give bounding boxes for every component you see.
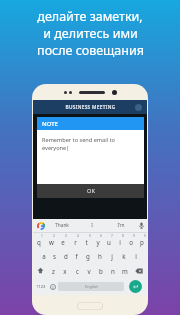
staticText: q xyxy=(37,238,41,246)
staticText: 1 xyxy=(41,234,43,238)
staticText: b xyxy=(99,267,103,275)
staticText: h xyxy=(98,252,102,260)
button[interactable]: Voice input xyxy=(135,219,147,232)
staticText: j xyxy=(111,252,113,260)
button[interactable]: Enter xyxy=(129,280,142,293)
staticText: f xyxy=(75,252,78,260)
staticText: 0 xyxy=(144,234,146,238)
staticText: делайте заметки, xyxy=(37,8,143,25)
staticText: d xyxy=(64,252,68,260)
staticText: 2 xyxy=(53,234,55,238)
staticText: Remember to send email to everyone| xyxy=(42,136,140,152)
staticText: y xyxy=(96,238,100,246)
button[interactable]: h xyxy=(94,248,106,263)
button[interactable]: Shift xyxy=(33,263,48,278)
staticText: после совещания xyxy=(37,42,144,59)
staticText: p xyxy=(140,238,144,246)
staticText: OK xyxy=(87,187,95,195)
staticText: 5 xyxy=(89,234,91,238)
staticText: English xyxy=(85,284,98,289)
button[interactable]: j xyxy=(106,248,118,263)
button[interactable]: I xyxy=(77,219,106,232)
button[interactable]: v xyxy=(83,263,95,278)
staticText: m xyxy=(122,267,128,275)
staticText: I xyxy=(91,222,93,229)
button[interactable]: 4 xyxy=(69,233,81,248)
staticText: k xyxy=(122,252,126,260)
button[interactable]: x xyxy=(59,263,71,278)
button[interactable]: 2 xyxy=(45,233,57,248)
button[interactable]: Thank xyxy=(47,219,77,232)
staticText: Thank xyxy=(55,222,69,229)
staticText: e xyxy=(61,238,65,246)
staticText: t xyxy=(85,238,88,246)
button[interactable]: d xyxy=(60,248,71,263)
staticText: 9 xyxy=(133,234,135,238)
staticText: 6 xyxy=(100,234,102,238)
button[interactable]: k xyxy=(118,248,130,263)
staticText: g xyxy=(86,252,90,260)
button[interactable]: z xyxy=(48,263,59,278)
button[interactable]: 5 xyxy=(81,233,92,248)
staticText: ?123 xyxy=(36,284,46,290)
button[interactable]: 3 xyxy=(57,233,69,248)
button[interactable]: f xyxy=(71,248,82,263)
button[interactable]: BUSINESS MEETING xyxy=(33,100,147,114)
button[interactable]: Emoji xyxy=(48,278,58,295)
button[interactable]: 7 xyxy=(103,233,114,248)
staticText: r xyxy=(74,238,77,246)
staticText: o xyxy=(129,238,133,246)
button[interactable]: l xyxy=(130,248,142,263)
staticText: a xyxy=(42,252,46,260)
button[interactable]: OK xyxy=(37,184,144,198)
staticText: l xyxy=(135,252,137,260)
staticText: 4 xyxy=(77,234,79,238)
button[interactable]: 9 xyxy=(125,233,136,248)
staticText: n xyxy=(111,267,115,275)
staticText: i xyxy=(119,238,121,246)
button[interactable]: a xyxy=(38,248,49,263)
button[interactable]: Backspace xyxy=(131,263,147,278)
button[interactable]: ?123 xyxy=(33,278,48,295)
button[interactable]: s xyxy=(49,248,60,263)
staticText: z xyxy=(52,267,55,275)
staticText: 7 xyxy=(111,234,113,238)
button[interactable]: b xyxy=(95,263,107,278)
button[interactable]: I'm xyxy=(106,219,135,232)
button[interactable]: 6 xyxy=(92,233,103,248)
staticText: 3 xyxy=(65,234,67,238)
button[interactable]: Home xyxy=(77,302,103,310)
staticText: s xyxy=(53,252,56,260)
button[interactable]: n xyxy=(107,263,119,278)
button[interactable]: 1 xyxy=(33,233,45,248)
button[interactable]: English xyxy=(58,282,124,291)
staticText: NOTE xyxy=(42,120,58,128)
button[interactable]: c xyxy=(71,263,83,278)
staticText: I'm xyxy=(117,222,125,229)
staticText: BUSINESS MEETING xyxy=(65,104,116,111)
button[interactable]: 0 xyxy=(136,233,147,248)
button[interactable]: 8 xyxy=(114,233,125,248)
button[interactable]: m xyxy=(119,263,131,278)
staticText: v xyxy=(87,267,91,275)
staticText: u xyxy=(107,238,111,246)
staticText: w xyxy=(49,238,54,246)
staticText: x xyxy=(63,267,67,275)
staticText: 8 xyxy=(122,234,124,238)
staticText: и делитесь ими xyxy=(43,25,138,42)
button[interactable]: Info xyxy=(135,104,142,111)
staticText: c xyxy=(76,267,79,275)
button[interactable]: g xyxy=(82,248,94,263)
